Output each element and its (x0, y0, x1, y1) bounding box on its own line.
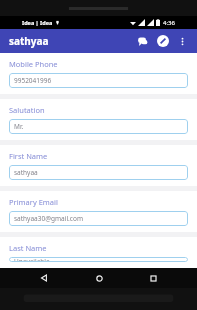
button[interactable]: Recent apps (143, 268, 163, 288)
staticText: Unavailable (14, 257, 50, 262)
button[interactable]: Mobile Phone (0, 53, 197, 94)
button[interactable]: Back (34, 268, 54, 288)
button[interactable]: Home (89, 268, 109, 288)
staticText: sathyaa (14, 168, 38, 177)
button[interactable]: First Name (0, 145, 197, 186)
button[interactable]: More options (174, 33, 190, 49)
button[interactable]: Primary Email (0, 191, 197, 232)
staticText: sathyaa (9, 34, 49, 48)
staticText: First Name (9, 151, 48, 161)
staticText: Mobile Phone (9, 59, 58, 69)
staticText: Last Name (9, 243, 47, 253)
staticText: 9952041996 (14, 76, 52, 85)
staticText: Primary Email (9, 197, 58, 207)
button[interactable]: Edit (154, 32, 172, 50)
staticText: sathyaa30@gmail.com (14, 214, 83, 223)
staticText: 4:36 (163, 19, 175, 27)
staticText: Mr. (14, 122, 24, 131)
button[interactable]: Messages (133, 32, 151, 50)
staticText: Salutation (9, 105, 45, 115)
button[interactable]: Salutation (0, 99, 197, 140)
staticText: Idea | Idea (22, 19, 53, 26)
button[interactable]: Last Name (0, 237, 197, 268)
